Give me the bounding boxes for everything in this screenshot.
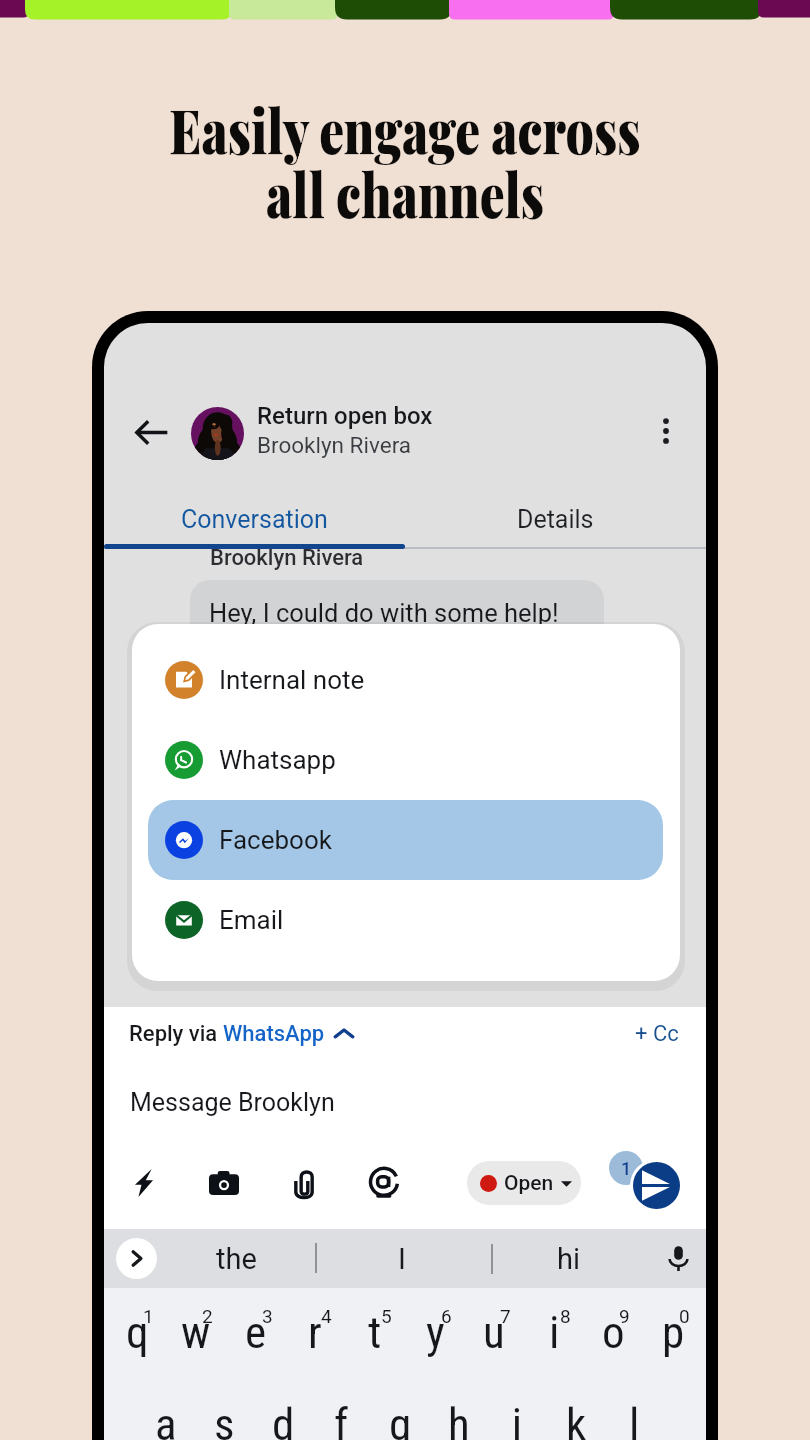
button[interactable]: Facebook xyxy=(148,800,663,880)
staticText: 2 xyxy=(202,1305,213,1327)
button[interactable] xyxy=(136,1398,196,1440)
button[interactable]: Send xyxy=(633,1162,680,1209)
button[interactable] xyxy=(464,1306,524,1376)
staticText: Hey, I could do with some help! xyxy=(209,598,559,628)
staticText: 3 xyxy=(262,1305,273,1327)
staticText: o xyxy=(602,1306,625,1359)
staticText: Reply via xyxy=(129,1021,223,1047)
staticText: k xyxy=(566,1398,587,1440)
staticText: s xyxy=(214,1398,235,1440)
staticText: 1 xyxy=(621,1158,632,1179)
staticText: I xyxy=(398,1242,406,1276)
button[interactable] xyxy=(546,1398,606,1440)
button[interactable] xyxy=(370,1398,430,1440)
staticText: i xyxy=(549,1306,560,1359)
button[interactable] xyxy=(226,1306,286,1376)
staticText: 1 xyxy=(143,1305,154,1327)
staticText: Conversation xyxy=(181,505,328,534)
button[interactable] xyxy=(253,1398,313,1440)
button[interactable] xyxy=(604,1398,664,1440)
staticText: e xyxy=(245,1306,267,1359)
button[interactable]: Email xyxy=(148,880,663,960)
button[interactable]: Camera xyxy=(190,1149,258,1217)
staticText: y xyxy=(426,1306,445,1359)
button[interactable] xyxy=(194,1398,254,1440)
staticText: Easily engage across all channels xyxy=(77,88,733,233)
staticText: 6 xyxy=(441,1305,452,1327)
button[interactable] xyxy=(643,1306,703,1376)
button[interactable]: the xyxy=(167,1229,305,1288)
staticText: p xyxy=(662,1306,685,1359)
button[interactable]: Whatsapp xyxy=(148,720,663,800)
staticText: f xyxy=(334,1398,349,1440)
staticText: Return open box xyxy=(257,402,433,430)
button[interactable] xyxy=(311,1398,371,1440)
staticText: l xyxy=(629,1398,640,1440)
staticText: Whatsapp xyxy=(219,745,336,775)
staticText: t xyxy=(368,1306,382,1359)
button[interactable] xyxy=(405,1306,465,1376)
staticText: Brooklyn Rivera xyxy=(210,545,364,571)
button[interactable]: Expand toolbar xyxy=(116,1238,157,1279)
staticText: r xyxy=(308,1306,322,1359)
staticText: g xyxy=(389,1398,412,1440)
staticText: Open xyxy=(504,1171,554,1196)
button[interactable]: Mention xyxy=(350,1149,418,1217)
staticText: Internal note xyxy=(219,665,365,695)
staticText: h xyxy=(448,1398,470,1440)
button[interactable]: Back xyxy=(128,409,174,455)
button[interactable] xyxy=(166,1306,226,1376)
button[interactable] xyxy=(285,1306,345,1376)
staticText: u xyxy=(483,1306,505,1359)
staticText: 7 xyxy=(500,1305,511,1327)
button[interactable]: + Cc xyxy=(626,1015,688,1053)
staticText: 8 xyxy=(560,1305,571,1327)
staticText: Details xyxy=(517,505,594,534)
staticText: w xyxy=(181,1306,211,1359)
button[interactable] xyxy=(107,1306,167,1376)
button[interactable]: Internal note xyxy=(148,640,663,720)
staticText: 9 xyxy=(619,1305,630,1327)
staticText: 5 xyxy=(381,1305,392,1327)
button[interactable]: I xyxy=(316,1229,488,1288)
button[interactable] xyxy=(429,1398,489,1440)
button[interactable]: Conversation xyxy=(104,489,405,549)
button[interactable]: Attach file xyxy=(270,1149,338,1217)
staticText: Facebook xyxy=(219,825,332,855)
staticText: WhatsApp xyxy=(223,1021,325,1047)
button[interactable] xyxy=(583,1306,643,1376)
button[interactable] xyxy=(524,1306,584,1376)
button[interactable]: Voice input xyxy=(650,1229,706,1288)
button[interactable]: Quick replies xyxy=(110,1149,178,1217)
button[interactable]: More options xyxy=(643,408,689,454)
button[interactable]: Details xyxy=(405,489,706,549)
staticText: Email xyxy=(219,905,284,935)
staticText: q xyxy=(126,1306,149,1359)
staticText: Brooklyn Rivera xyxy=(257,432,412,458)
staticText: d xyxy=(272,1398,295,1440)
staticText: hi xyxy=(557,1242,581,1276)
button[interactable]: Reply via xyxy=(129,1021,354,1047)
button[interactable] xyxy=(345,1306,405,1376)
staticText: Message Brooklyn xyxy=(130,1088,335,1117)
button[interactable]: Contact avatar xyxy=(191,407,244,460)
staticText: a xyxy=(155,1398,177,1440)
staticText: 0 xyxy=(679,1305,690,1327)
button[interactable]: hi xyxy=(493,1229,645,1288)
staticText: j xyxy=(512,1398,523,1440)
button[interactable]: Open xyxy=(467,1161,581,1205)
button[interactable] xyxy=(487,1398,547,1440)
staticText: 4 xyxy=(321,1305,332,1327)
staticText: the xyxy=(216,1242,257,1276)
staticText: + Cc xyxy=(635,1021,679,1047)
